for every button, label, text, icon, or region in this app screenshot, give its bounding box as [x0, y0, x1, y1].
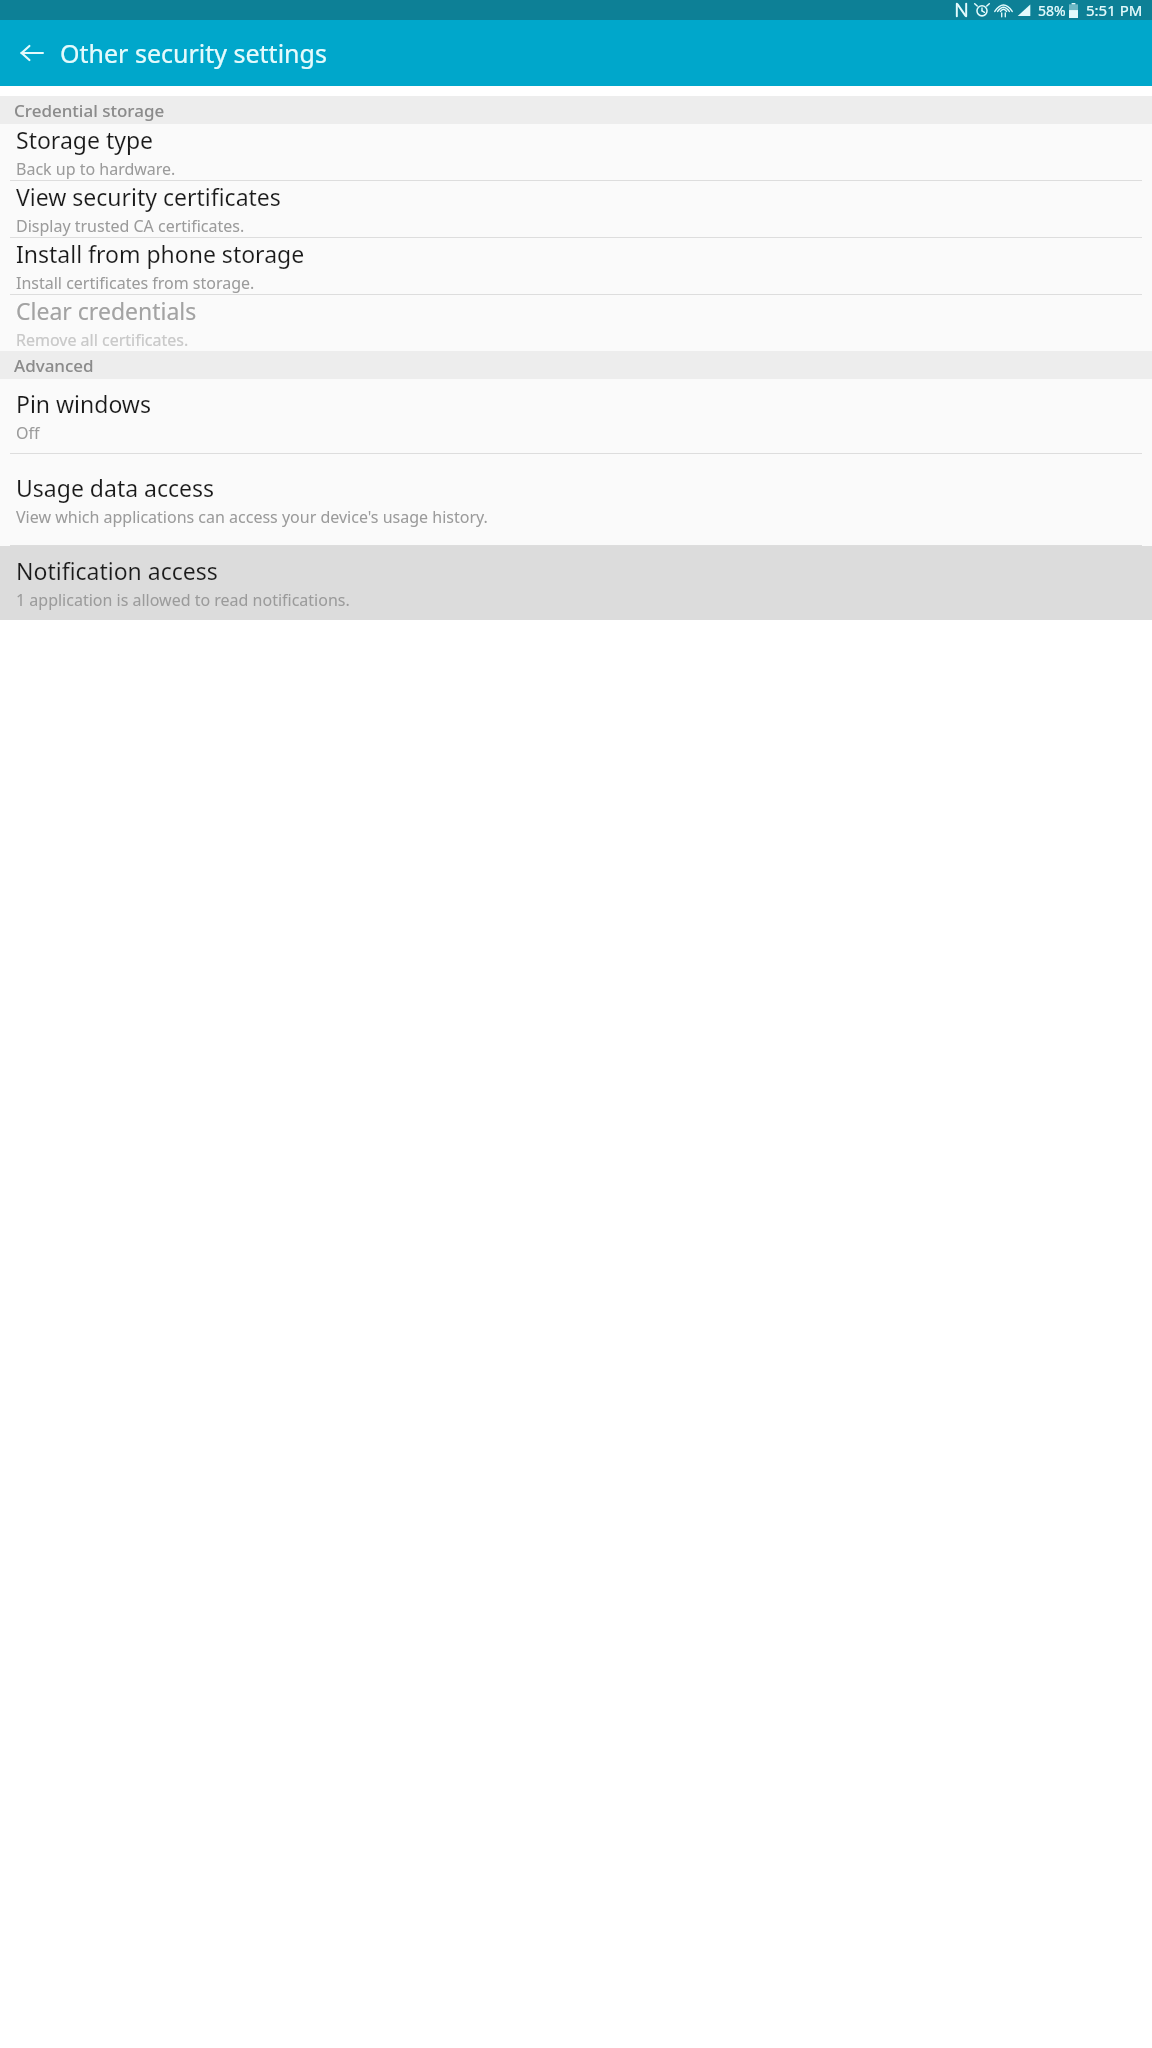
staticText: Install from phone storage — [16, 238, 305, 269]
staticText: Other security settings — [60, 36, 327, 70]
staticText: Remove all certificates. — [16, 329, 189, 351]
button[interactable]: Pin windows — [0, 379, 1152, 453]
staticText: Pin windows — [16, 388, 151, 419]
button[interactable]: Notification access — [0, 546, 1152, 620]
button[interactable]: Storage type — [0, 124, 1152, 180]
staticText: Display trusted CA certificates. — [16, 215, 245, 237]
staticText: View security certificates — [16, 181, 281, 212]
staticText: Advanced — [14, 354, 94, 377]
button[interactable]: Back — [8, 29, 56, 77]
button[interactable]: Clear credentials — [0, 295, 1152, 351]
staticText: Back up to hardware. — [16, 158, 176, 180]
staticText: Credential storage — [14, 99, 165, 122]
button[interactable]: Usage data access — [0, 454, 1152, 545]
button[interactable]: View security certificates — [0, 181, 1152, 237]
staticText: Install certificates from storage. — [16, 272, 255, 294]
staticText: Clear credentials — [16, 295, 197, 326]
staticText: 58% — [1038, 1, 1066, 20]
staticText: View which applications can access your … — [16, 506, 488, 528]
staticText: Storage type — [16, 124, 154, 155]
button[interactable]: Install from phone storage — [0, 238, 1152, 294]
staticText: Usage data access — [16, 472, 215, 503]
staticText: 1 application is allowed to read notific… — [16, 589, 350, 611]
staticText: Off — [16, 422, 40, 444]
staticText: 5:51 PM — [1086, 0, 1143, 20]
staticText: Notification access — [16, 555, 218, 586]
